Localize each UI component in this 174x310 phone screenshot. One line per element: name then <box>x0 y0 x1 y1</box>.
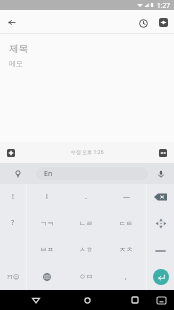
staticText: ㄱㅋ <box>40 219 54 228</box>
button[interactable]: ! <box>0 184 26 210</box>
button[interactable]: Hide keyboard <box>151 290 171 310</box>
button[interactable]: En <box>36 167 148 180</box>
staticText: ㄷㅌ <box>119 219 133 228</box>
staticText: 수정 오후 1:26 <box>71 149 104 156</box>
button[interactable]: Add <box>1 143 21 163</box>
button[interactable]: Home <box>77 290 97 310</box>
button[interactable]: ㅈㅊ <box>106 236 146 263</box>
button[interactable]: ?1☺ <box>0 263 26 290</box>
button[interactable]: ㄱㅋ <box>27 210 66 236</box>
button[interactable]: Enter <box>147 263 174 290</box>
staticText: ㅅㅎ <box>79 245 93 254</box>
other: Change language <box>41 271 53 283</box>
button[interactable]: ㅂㅍ <box>27 236 66 263</box>
button[interactable]: — <box>106 184 146 210</box>
button[interactable]: ㅇㅁ <box>66 263 106 290</box>
button[interactable]: ㄷㅌ <box>106 210 146 236</box>
button[interactable]: ㄴㄹ <box>66 210 106 236</box>
staticText: 1:27 <box>157 1 170 10</box>
button[interactable]: Change language <box>27 263 66 290</box>
staticText: ㅂㅍ <box>40 245 54 254</box>
button[interactable]: l <box>27 184 66 210</box>
button[interactable]: Archive <box>153 12 174 33</box>
staticText: . <box>85 192 87 202</box>
button[interactable]: Suggestions <box>0 163 36 184</box>
button[interactable]: Cursor control <box>147 210 174 236</box>
staticText: En <box>44 169 53 179</box>
staticText: l <box>46 192 48 202</box>
button[interactable]: Recents <box>125 290 145 310</box>
button[interactable]: Back <box>26 290 46 310</box>
button[interactable]: Backspace <box>147 184 174 210</box>
staticText: , <box>125 272 127 282</box>
staticText: ? <box>11 218 15 228</box>
staticText: ㅇㅁ <box>79 272 93 281</box>
button[interactable]: Reminder <box>133 13 153 33</box>
button[interactable]: Back <box>0 10 24 34</box>
staticText: — <box>123 192 130 202</box>
staticText: 메모 <box>9 59 23 68</box>
staticText: ! <box>12 192 14 202</box>
button[interactable]: Space <box>147 236 174 263</box>
staticText: ?1☺ <box>7 273 20 281</box>
button[interactable]: More options <box>153 143 173 163</box>
button[interactable]: ㅅㅎ <box>66 236 106 263</box>
button[interactable]: ? <box>0 210 26 236</box>
staticText: ㄴㄹ <box>79 219 93 228</box>
staticText: ㅈㅊ <box>119 245 133 254</box>
button[interactable]: Voice input <box>148 163 174 184</box>
staticText: 제목 <box>9 43 28 55</box>
